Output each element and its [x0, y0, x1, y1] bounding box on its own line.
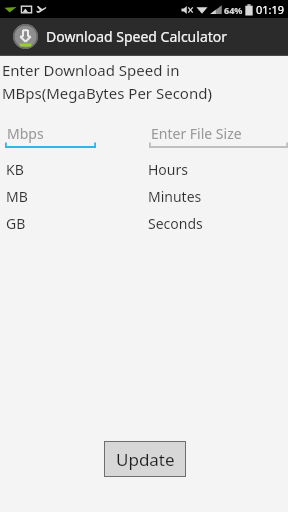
staticText: MB	[6, 187, 28, 206]
staticText: Mbps	[7, 124, 44, 143]
staticText: Download Speed Calculator	[46, 27, 228, 46]
button[interactable]: Enter File Size	[149, 123, 288, 149]
staticText: Hours	[148, 160, 188, 179]
staticText: Enter File Size	[151, 124, 242, 143]
staticText: 64%	[224, 4, 243, 16]
staticText: Minutes	[148, 187, 202, 206]
other: App icon	[13, 24, 38, 49]
staticText: 01:19	[256, 2, 285, 17]
staticText: Update	[116, 448, 175, 471]
button[interactable]: App icon	[0, 18, 288, 55]
staticText: Enter Download Speed in	[2, 60, 180, 80]
staticText: Seconds	[148, 214, 203, 233]
staticText: KB	[6, 160, 24, 179]
staticText: MBps(MegaBytes Per Second)	[2, 83, 212, 103]
button[interactable]: Update	[105, 442, 185, 476]
staticText: GB	[6, 214, 26, 233]
button[interactable]: Mbps	[5, 123, 96, 149]
